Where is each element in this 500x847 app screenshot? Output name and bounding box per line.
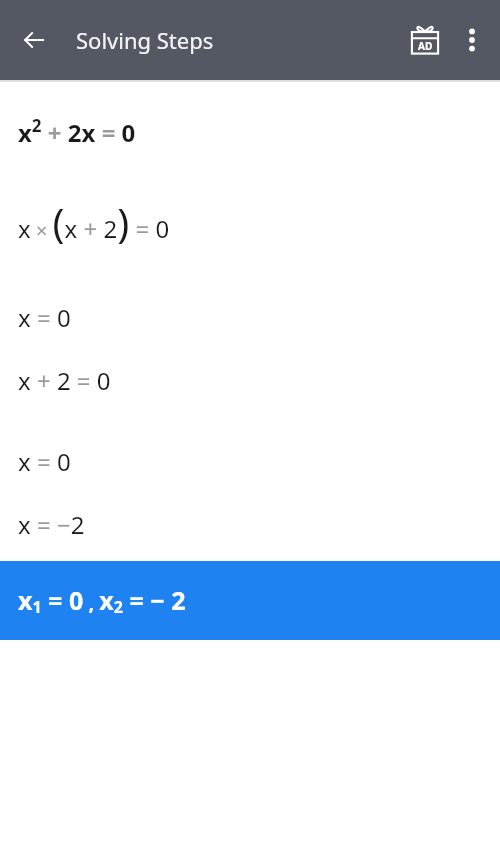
staticText: AD <box>418 39 433 53</box>
button[interactable]: Watch ad for reward <box>400 15 450 65</box>
button[interactable]: Back <box>10 16 58 64</box>
staticText: x = 0 <box>18 445 500 478</box>
staticText: x × (x + 2) = 0 <box>18 195 500 249</box>
staticText: x1 = 0 , x2 = − 2 <box>18 583 186 618</box>
button[interactable]: More options <box>450 18 494 62</box>
staticText: x2 + 2x = 0 <box>18 114 500 149</box>
button[interactable]: x1 = 0 , x2 = − 2 <box>0 561 500 640</box>
staticText: Solving Steps <box>76 25 400 55</box>
staticText: x = −2 <box>18 508 500 541</box>
staticText: x + 2 = 0 <box>18 364 500 397</box>
staticText: x = 0 <box>18 301 500 334</box>
